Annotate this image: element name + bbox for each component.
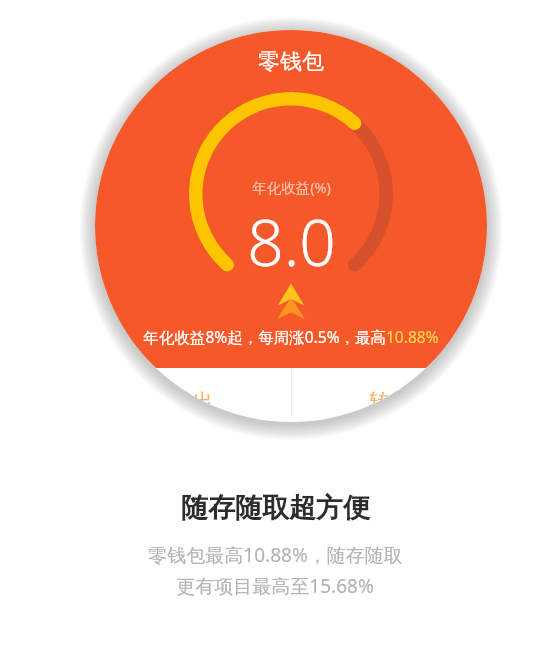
staticText: 转入 <box>369 389 409 414</box>
staticText: 零钱包 <box>258 48 324 76</box>
staticText: 零钱包最高10.88%，随存随取 <box>148 542 403 568</box>
staticText: 年化收益(%) <box>252 177 331 197</box>
staticText: 随存随取超方便 <box>181 491 370 525</box>
button[interactable]: 转入 <box>291 368 487 422</box>
staticText: 转出 <box>173 389 213 414</box>
staticText: 年化收益8%起，每周涨0.5%，最高10.88% <box>143 326 439 347</box>
staticText: 更有项目最高至15.68% <box>176 573 374 599</box>
button[interactable]: 转出 <box>95 368 291 422</box>
staticText: 8.0 <box>247 198 336 285</box>
